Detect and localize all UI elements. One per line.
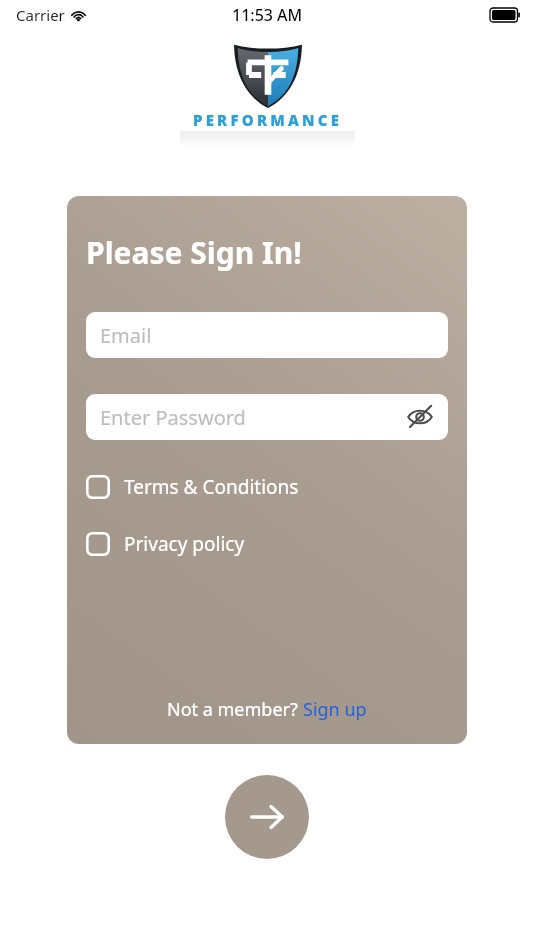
button[interactable]: Continue	[225, 775, 309, 859]
staticText: PERFORMANCE	[193, 110, 343, 130]
staticText: Enter Password	[100, 404, 246, 431]
button[interactable]: Show password	[404, 401, 436, 433]
staticText: Carrier	[16, 5, 65, 25]
button[interactable]: Terms & Conditions	[86, 474, 448, 500]
staticText: Sign up	[303, 697, 367, 722]
staticText: 11:53 AM	[232, 4, 303, 26]
button[interactable]: Sign up	[303, 697, 367, 722]
staticText: Privacy policy	[124, 531, 245, 557]
button[interactable]: Enter Password	[86, 394, 448, 440]
staticText: Please Sign In!	[86, 232, 302, 273]
staticText: Terms & Conditions	[124, 474, 299, 500]
staticText: Email	[100, 322, 152, 349]
button[interactable]: Email	[86, 312, 448, 358]
staticText: Not a member?	[167, 697, 303, 722]
button[interactable]: Privacy policy	[86, 531, 448, 557]
